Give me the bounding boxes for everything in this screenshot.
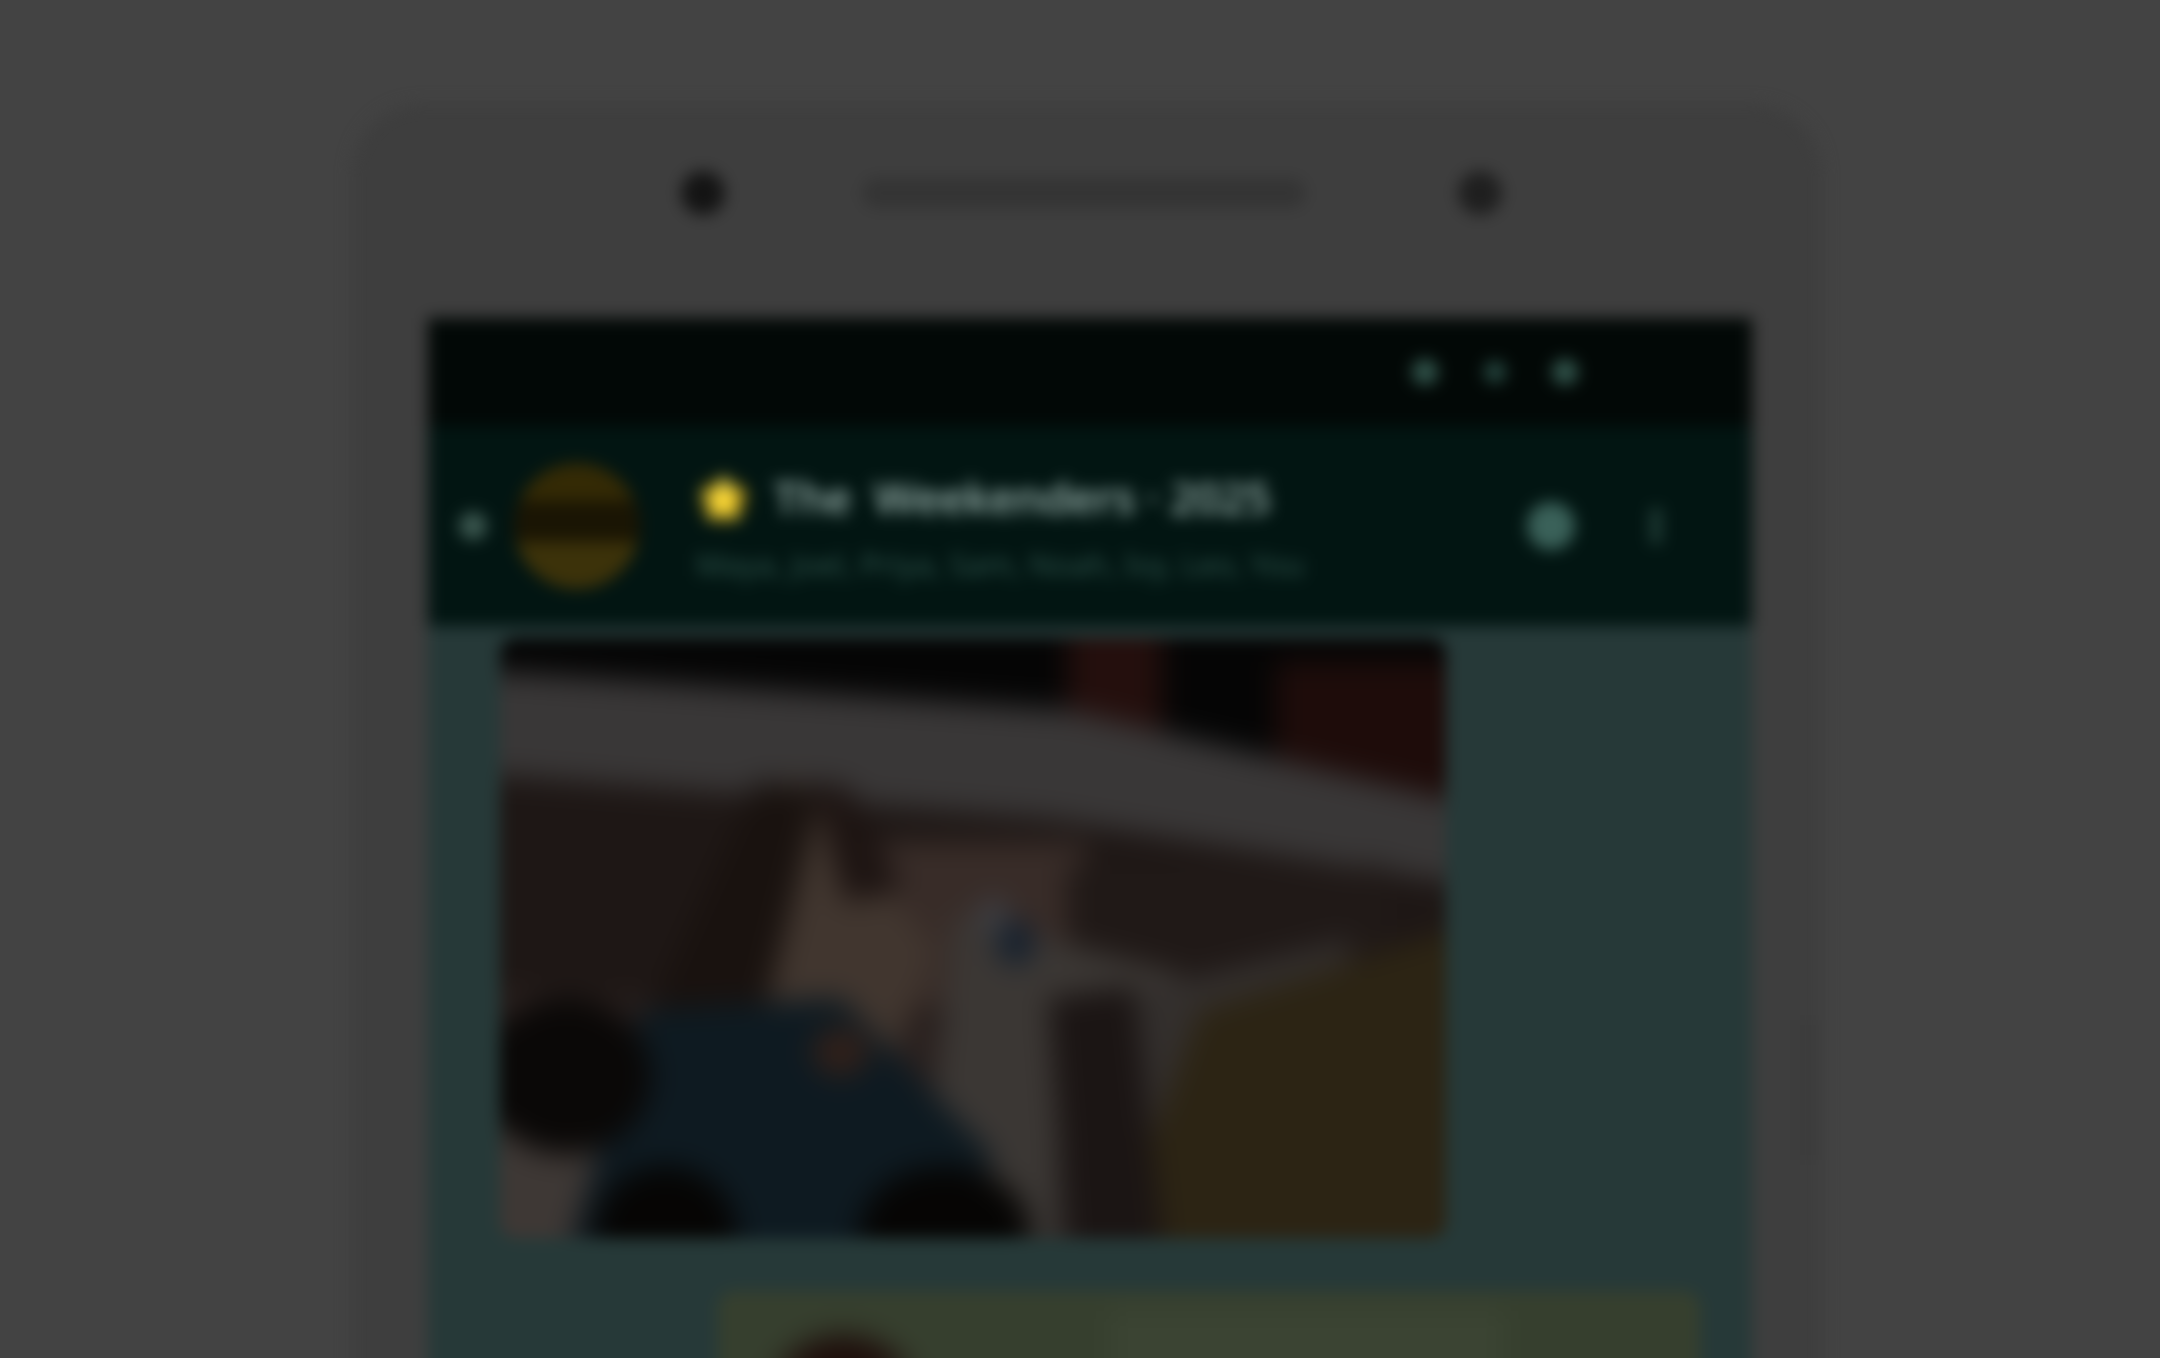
button[interactable]: More options	[1606, 476, 1706, 576]
staticText: Maya, Joel, Priya, Sam, Noah, Ivy, Leo, …	[696, 543, 1305, 585]
button[interactable]: Photo you sent	[718, 1291, 1700, 1358]
staticText: 🌟 The Weekenders · 2025	[696, 467, 1271, 527]
button[interactable]: Photo from Maya	[500, 638, 1446, 1238]
button[interactable]: Group profile photo	[514, 463, 640, 589]
button[interactable]: Back	[442, 495, 504, 557]
button[interactable]: Video call	[1496, 471, 1606, 581]
